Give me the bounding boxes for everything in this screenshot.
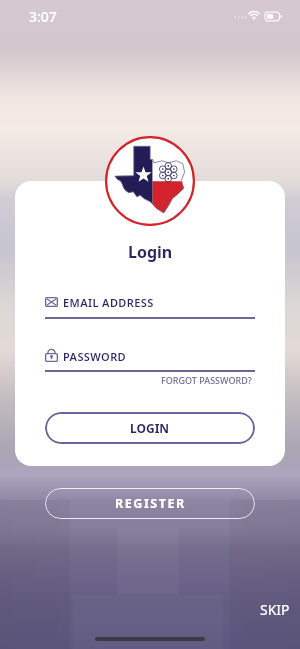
staticText: PASSWORD [63, 349, 127, 364]
staticText: FORGOT PASSWORD? [161, 374, 252, 386]
staticText: 3:07 [29, 7, 57, 26]
other: Texas logo [105, 136, 195, 226]
button[interactable]: FORGOT PASSWORD? [159, 372, 254, 388]
staticText: Login [128, 241, 173, 263]
button[interactable]: EMAIL ADDRESS [45, 289, 255, 321]
other: Status icons [234, 10, 284, 22]
button[interactable]: LOGIN [45, 412, 255, 444]
staticText: EMAIL ADDRESS [63, 295, 154, 310]
staticText: SKIP [260, 600, 290, 619]
button[interactable]: PASSWORD [45, 343, 255, 374]
staticText: LOGIN [130, 420, 170, 436]
button[interactable]: REGISTER [45, 488, 255, 519]
button[interactable]: SKIP [254, 594, 296, 625]
staticText: REGISTER [115, 495, 186, 512]
